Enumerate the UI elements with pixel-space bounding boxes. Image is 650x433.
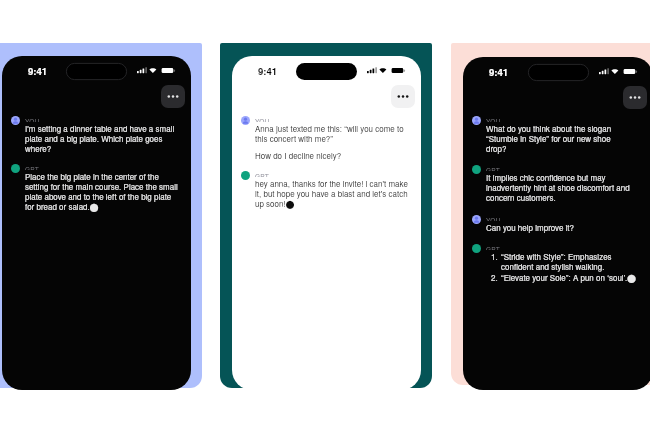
button[interactable]: GPT [472,161,650,203]
button[interactable]: More options [623,86,647,109]
staticText: GPT [255,171,270,177]
staticText: “Stride with Style”: Emphasizes confiden… [501,251,643,272]
button[interactable]: YOU [11,112,180,154]
staticText: GPT [486,244,501,250]
staticText: 9:41 [489,65,509,79]
button[interactable]: YOU [472,112,650,154]
staticText: Can you help improve it? [486,222,574,233]
staticText: 2. [491,272,498,283]
button[interactable]: GPT [241,167,410,209]
staticText: Anna just texted me this: “will you come… [255,123,410,144]
button[interactable]: More options [391,85,415,108]
staticText: GPT [486,165,501,171]
staticText: 1. [491,251,498,262]
staticText: 9:41 [28,64,48,78]
staticText: “Elevate your Sole”: A pun on ‘soul’.⬤ [501,272,637,283]
staticText: YOU [255,116,270,122]
staticText: What do you think about the slogan “Stum… [486,123,632,154]
staticText: It implies chic confidence but may inadv… [486,172,632,203]
staticText: YOU [486,116,501,122]
staticText: I'm setting a dinner table and have a sm… [25,123,180,154]
staticText: hey anna, thanks for the invite! i can't… [255,178,410,209]
button[interactable]: YOU [241,112,410,161]
button[interactable]: GPT [472,240,650,283]
staticText: Place the big plate in the center of the… [25,171,180,212]
button[interactable]: GPT [11,160,180,212]
staticText: How do I decline nicely? [255,150,342,161]
staticText: GPT [25,164,40,170]
staticText: YOU [25,116,40,122]
staticText: YOU [486,215,501,221]
button[interactable]: More options [161,85,185,108]
button[interactable]: YOU [472,211,650,233]
staticText: 9:41 [258,64,278,78]
